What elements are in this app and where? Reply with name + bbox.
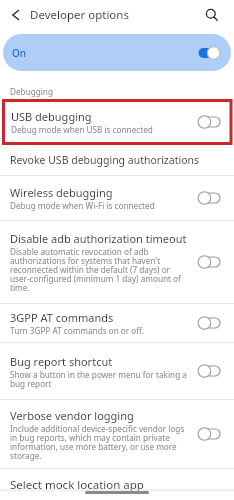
button[interactable] bbox=[196, 0, 228, 30]
staticText: Developer options bbox=[30, 7, 129, 23]
staticText: Verbose vendor logging bbox=[10, 408, 134, 423]
button[interactable] bbox=[0, 0, 30, 30]
staticText: On bbox=[12, 46, 27, 60]
button[interactable]: 3GPP AT commands bbox=[0, 304, 234, 342]
button[interactable]: Wireless debugging bbox=[0, 176, 234, 220]
staticText: Bug report shortcut bbox=[10, 354, 113, 369]
button[interactable]: On bbox=[3, 34, 231, 71]
staticText: Disable automatic revocation of adb auth… bbox=[10, 246, 181, 293]
button[interactable]: USB debugging bbox=[0, 99, 234, 145]
button[interactable]: Bug report shortcut bbox=[0, 343, 234, 399]
staticText: Turn 3GPP AT commands on or off. bbox=[10, 325, 144, 336]
staticText: Debug mode when Wi-Fi is connected bbox=[10, 200, 155, 211]
staticText: Disable adb authorization timeout bbox=[10, 231, 187, 246]
staticText: 3GPP AT commands bbox=[10, 310, 114, 325]
staticText: Include additional device-specific vendo… bbox=[10, 423, 185, 461]
staticText: Select mock location app bbox=[10, 477, 144, 493]
button[interactable]: Verbose vendor logging bbox=[0, 400, 234, 468]
staticText: Show a button in the power menu for taki… bbox=[10, 369, 187, 389]
button[interactable]: Disable adb authorization timeout bbox=[0, 221, 234, 303]
staticText: Wireless debugging bbox=[10, 185, 113, 200]
staticText: USB debugging bbox=[11, 109, 92, 124]
staticText: Debug mode when USB is connected bbox=[11, 124, 153, 135]
staticText: Revoke USB debugging authorizations bbox=[10, 153, 200, 167]
button[interactable]: Revoke USB debugging authorizations bbox=[0, 145, 234, 175]
staticText: Debugging bbox=[10, 86, 53, 97]
button[interactable]: Select mock location app bbox=[0, 469, 234, 500]
